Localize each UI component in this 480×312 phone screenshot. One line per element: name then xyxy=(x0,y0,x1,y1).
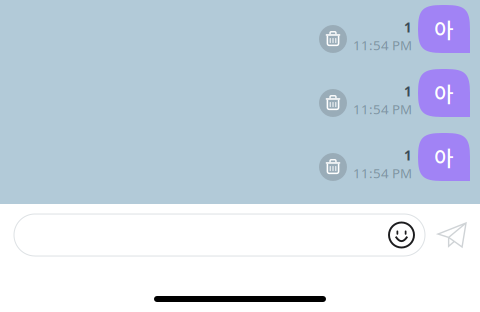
staticText: 1 xyxy=(404,83,412,100)
staticText: 1 xyxy=(404,147,412,164)
staticText: 아 xyxy=(434,142,454,172)
staticText: 11:54 PM xyxy=(353,164,412,182)
staticText: 11:54 PM xyxy=(353,100,412,118)
button[interactable]: 아 xyxy=(418,5,470,53)
staticText: 1 xyxy=(404,19,412,36)
button[interactable]: Send xyxy=(425,214,477,256)
staticText: 아 xyxy=(434,78,454,108)
staticText: 아 xyxy=(434,14,454,44)
button[interactable]: Delete message xyxy=(319,89,347,117)
staticText: 11:54 PM xyxy=(353,36,412,54)
button[interactable]: 아 xyxy=(418,133,470,181)
button[interactable]: Emoji xyxy=(389,222,414,247)
button[interactable]: Delete message xyxy=(319,25,347,53)
button[interactable]: 아 xyxy=(418,69,470,117)
button[interactable]: Delete message xyxy=(319,153,347,181)
